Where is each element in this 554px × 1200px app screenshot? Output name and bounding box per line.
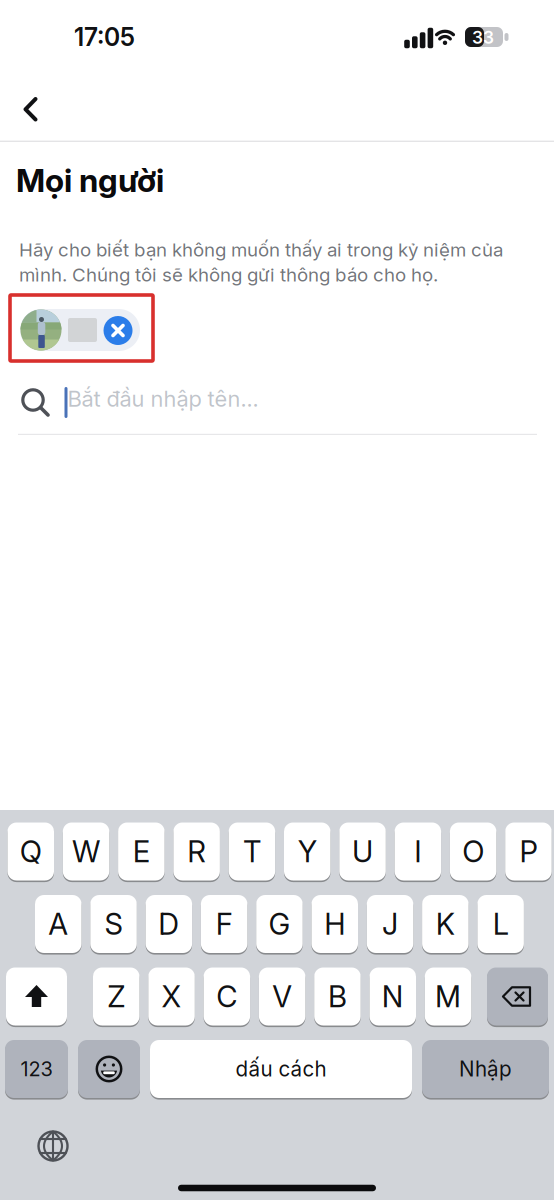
button[interactable]: Emoji [78, 1040, 140, 1098]
button[interactable]: Delete [487, 967, 548, 1025]
staticText: T [243, 834, 261, 869]
staticText: V [272, 979, 292, 1014]
button[interactable]: B [314, 967, 361, 1025]
button[interactable]: Y [284, 822, 330, 880]
staticText: G [268, 906, 290, 942]
button[interactable]: Back [10, 89, 50, 129]
button[interactable]: A [35, 895, 81, 953]
staticText: D [158, 906, 179, 942]
staticText: N [382, 979, 404, 1014]
staticText: E [133, 834, 150, 869]
staticText: Hãy cho biết bạn không muốn thấy ai tron… [19, 238, 503, 261]
staticText: L [493, 906, 509, 942]
button[interactable]: Bắt đầu nhập tên [18, 380, 537, 426]
staticText: Mọi người [16, 161, 164, 200]
staticText: W [72, 834, 100, 869]
button[interactable]: G [256, 895, 303, 953]
button[interactable]: R [173, 822, 220, 880]
button[interactable]: L [477, 895, 524, 953]
button[interactable]: Q [7, 822, 54, 880]
button[interactable]: O [450, 822, 496, 880]
staticText: S [104, 906, 122, 942]
staticText: Q [20, 834, 42, 869]
staticText: C [216, 979, 237, 1014]
button[interactable]: V [259, 967, 305, 1025]
button[interactable]: E [118, 822, 165, 880]
staticText: O [462, 834, 484, 869]
button[interactable]: C [204, 967, 250, 1025]
button[interactable]: S [90, 895, 137, 953]
button[interactable]: Next keyboard [31, 1124, 75, 1168]
button[interactable]: dấu cách [150, 1040, 412, 1098]
button[interactable]: X [148, 967, 195, 1025]
staticText: P [519, 834, 537, 869]
staticText: Bắt đầu nhập tên... [67, 385, 258, 412]
button[interactable]: 123 [5, 1040, 68, 1098]
staticText: X [162, 979, 182, 1014]
button[interactable]: P [505, 822, 552, 880]
staticText: B [328, 979, 347, 1014]
button[interactable]: Remove [103, 316, 132, 345]
staticText: 17:05 [74, 22, 135, 52]
staticText: dấu cách [235, 1056, 326, 1081]
staticText: M [435, 979, 461, 1014]
button[interactable]: M [425, 967, 471, 1025]
staticText: 123 [20, 1057, 52, 1081]
button[interactable]: Shift [6, 967, 67, 1025]
staticText: I [414, 834, 421, 869]
staticText: 33 [472, 27, 494, 48]
button[interactable]: Z [93, 967, 139, 1025]
staticText: Z [107, 979, 125, 1014]
button[interactable]: T [229, 822, 275, 880]
staticText: U [352, 834, 373, 869]
button[interactable]: J [367, 895, 413, 953]
button[interactable]: I [395, 822, 441, 880]
button[interactable]: F [201, 895, 247, 953]
staticText: H [324, 906, 345, 942]
staticText: Y [298, 834, 317, 869]
button[interactable]: Nhập [422, 1040, 549, 1098]
button[interactable]: K [422, 895, 469, 953]
staticText: J [382, 906, 398, 942]
button[interactable]: H [311, 895, 358, 953]
button[interactable]: W [63, 822, 109, 880]
staticText: A [48, 906, 68, 942]
staticText: Nhập [459, 1056, 512, 1081]
staticText: R [187, 834, 206, 869]
button[interactable]: D [146, 895, 192, 953]
staticText: K [436, 906, 455, 942]
button[interactable]: U [339, 822, 386, 880]
button[interactable]: N [369, 967, 416, 1025]
staticText: mình. Chúng tôi sẽ không gửi thông báo c… [19, 263, 438, 286]
staticText: F [216, 906, 233, 942]
